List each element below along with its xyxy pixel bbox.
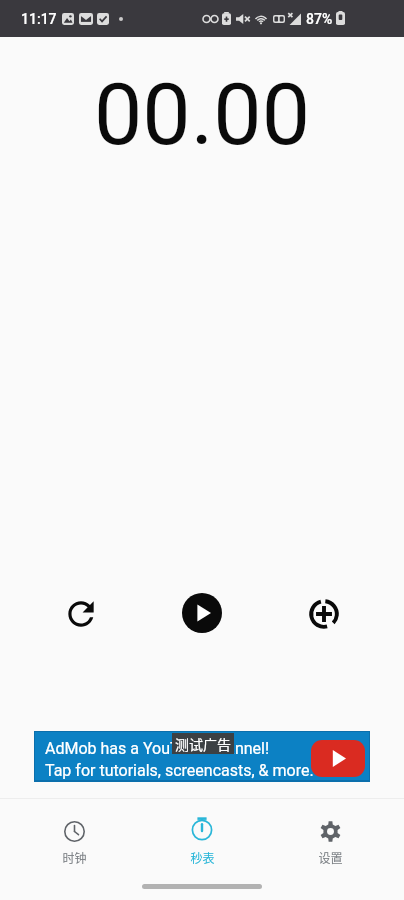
- button[interactable]: AdMob has a YouTube channel!: [35, 732, 369, 780]
- staticText: 秒表: [190, 849, 215, 866]
- staticText: 11:17: [21, 11, 57, 27]
- button[interactable]: Reset: [53, 586, 109, 642]
- staticText: Tap for tutorials, screencasts, & more.: [45, 761, 314, 780]
- staticText: 87%: [306, 11, 333, 27]
- button[interactable]: Start: [174, 585, 230, 641]
- button[interactable]: 秒表: [154, 806, 250, 868]
- staticText: AdMob has a YouTube channel!: [45, 739, 270, 758]
- button[interactable]: 时钟: [26, 806, 122, 868]
- button[interactable]: 设置: [282, 806, 378, 868]
- button[interactable]: Lap: [296, 586, 352, 642]
- staticText: 时钟: [62, 849, 87, 866]
- staticText: 设置: [318, 849, 343, 866]
- staticText: 测试广告: [175, 734, 231, 754]
- staticText: 00.00: [94, 64, 311, 165]
